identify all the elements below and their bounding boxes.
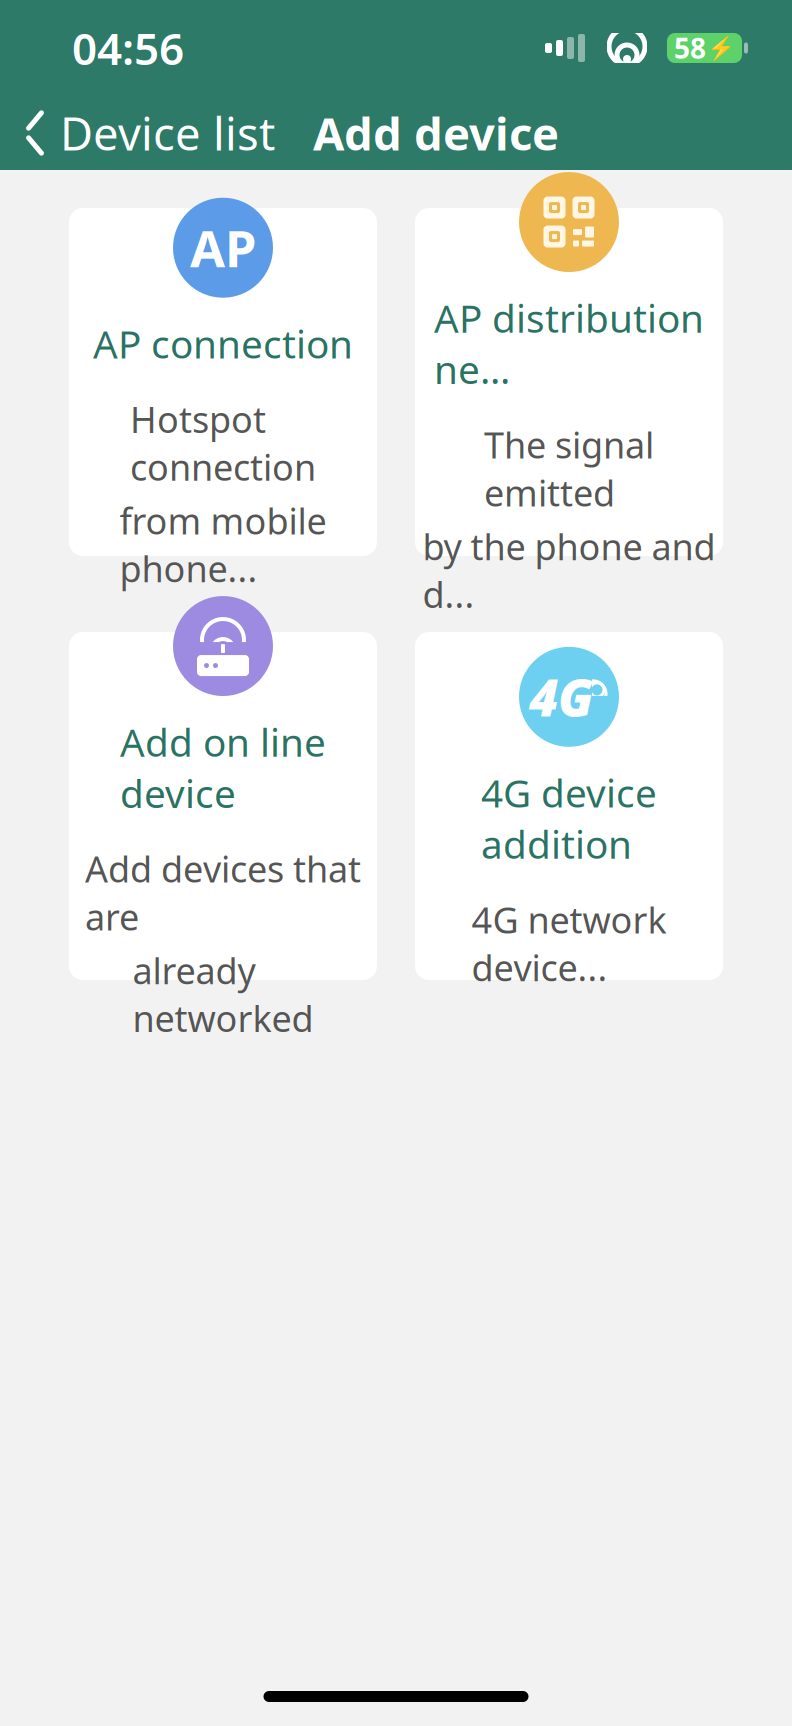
button[interactable]: 4G — [415, 632, 723, 980]
staticText: Add on line device — [120, 716, 326, 819]
staticText: by the phone and d... — [422, 522, 715, 618]
staticText: The signal emitted — [484, 421, 654, 516]
staticText: Add device — [313, 103, 559, 163]
staticText: already networked — [132, 946, 313, 1042]
staticText: 4G device addition — [481, 767, 657, 869]
staticText: from mobile phone... — [119, 497, 326, 592]
staticText: 4G network device... — [471, 895, 666, 991]
button[interactable]: Add on line device — [69, 632, 377, 980]
staticText: ⚡ — [707, 35, 735, 61]
button[interactable]: AP — [69, 208, 377, 556]
staticText: Add devices that are — [85, 845, 361, 940]
staticText: 04:56 — [72, 19, 184, 77]
staticText: AP connection — [93, 318, 353, 369]
staticText: AP — [190, 214, 256, 281]
staticText: Device list — [60, 103, 275, 163]
staticText: Hotspot connection — [130, 395, 316, 491]
staticText: 58 — [674, 29, 706, 67]
staticText: 4G — [529, 663, 593, 730]
button[interactable]: Device list — [0, 91, 275, 175]
staticText: AP distribution ne... — [434, 292, 704, 395]
button[interactable]: AP distribution ne... — [415, 208, 723, 556]
